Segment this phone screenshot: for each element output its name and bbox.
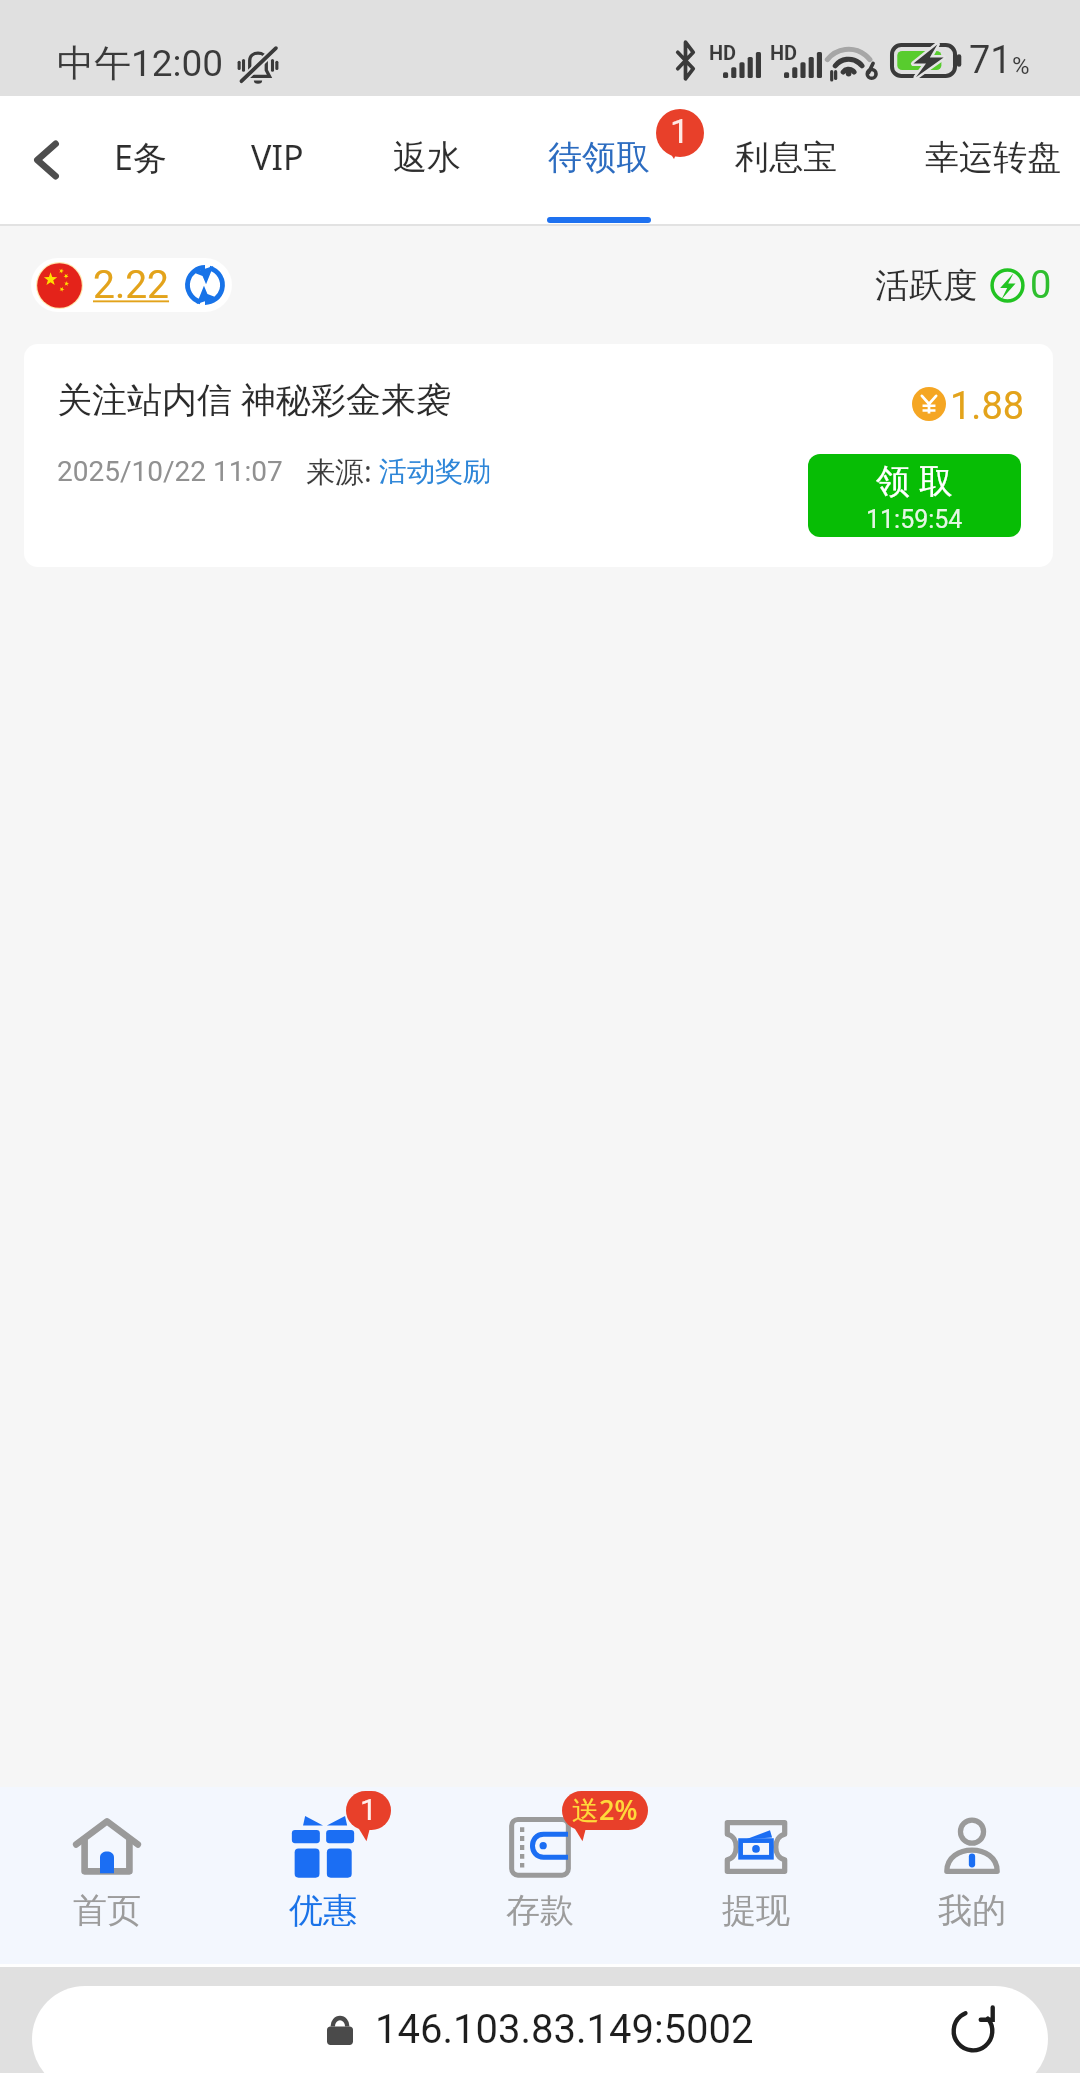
staticText: 优惠 (289, 1889, 357, 1932)
button[interactable]: 2.22 (36, 258, 228, 312)
staticText: HD (770, 41, 798, 64)
staticText: 送2% (572, 1791, 638, 1828)
staticText: 146.103.83.149:5002 (375, 2006, 754, 2053)
button[interactable]: VIP (227, 96, 327, 224)
staticText: 1 (670, 111, 690, 151)
staticText: 0 (1030, 263, 1052, 308)
staticText: 领 取 (876, 457, 953, 503)
button[interactable]: 利息宝 (716, 96, 856, 224)
staticText: 2.22 (93, 262, 170, 308)
staticText: 来源: (306, 451, 372, 491)
button[interactable]: 首页 (7, 1787, 207, 1964)
button[interactable]: 146.103.83.149:5002 (32, 1986, 1048, 2073)
staticText: 提现 (722, 1889, 790, 1932)
staticText: 1 (360, 1792, 377, 1827)
button[interactable]: Back (8, 114, 84, 206)
staticText: 我的 (938, 1889, 1006, 1932)
staticText: 首页 (73, 1889, 141, 1932)
staticText: E务 (114, 134, 167, 180)
staticText: 返水 (393, 136, 461, 179)
staticText: 幸运转盘 (925, 136, 1061, 179)
button[interactable]: 我的 (872, 1787, 1072, 1964)
button[interactable]: 活跃度 (875, 263, 1052, 308)
staticText: 活跃度 (875, 264, 977, 307)
staticText: 1.88 (950, 384, 1025, 429)
button[interactable]: 优惠 (223, 1787, 423, 1964)
staticText: 2025/10/22 11:07 (57, 455, 283, 488)
staticText: 71 (969, 38, 1012, 83)
button[interactable]: 领 取 (808, 454, 1021, 537)
other: Refresh (182, 261, 228, 309)
staticText: 利息宝 (735, 136, 837, 179)
staticText: 存款 (506, 1889, 574, 1932)
button[interactable]: 返水 (373, 96, 481, 224)
staticText: 活动奖励 (379, 454, 491, 489)
button[interactable]: 待领取 (529, 96, 669, 224)
button[interactable]: 幸运转盘 (906, 96, 1080, 224)
staticText: 待领取 (548, 136, 650, 179)
staticText: % (1012, 52, 1030, 80)
staticText: HD (709, 41, 737, 64)
staticText: 11:59:54 (866, 505, 963, 534)
staticText: VIP (251, 134, 304, 180)
other: Reload (950, 2008, 996, 2054)
button[interactable]: 关注站内信 神秘彩金来袭 (24, 344, 1053, 567)
button[interactable]: E务 (87, 96, 193, 224)
button[interactable]: 提现 (656, 1787, 856, 1964)
staticText: 关注站内信 神秘彩金来袭 (57, 375, 452, 423)
staticText: 中午12:00 (57, 40, 224, 87)
button[interactable]: 存款 (440, 1787, 640, 1964)
